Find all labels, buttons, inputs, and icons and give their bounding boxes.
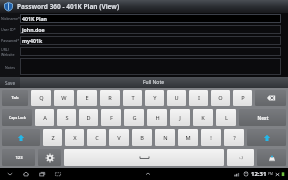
staticText: V [117,134,121,142]
button[interactable]: Q [31,90,51,106]
staticText: U [174,94,179,102]
button[interactable]: Full Note [20,77,288,88]
button[interactable]: O [211,90,230,106]
staticText: Next [257,115,269,121]
button[interactable]: K [193,109,213,126]
button[interactable]: :-) [227,149,254,166]
button[interactable] [144,170,152,178]
staticText: F [110,114,113,122]
button[interactable]: Settings [38,149,61,166]
staticText: N [163,134,168,142]
button[interactable]: Notes [0,57,288,77]
button[interactable]: Shift [2,129,40,146]
button[interactable]: User ID* [0,24,288,35]
staticText: Notes [5,65,15,70]
staticText: Z [51,134,55,142]
staticText: M [185,134,191,142]
staticText: 12:31 [251,170,267,178]
button[interactable]: R [100,90,120,106]
staticText: Caps Lock [9,115,26,120]
staticText: J [179,114,181,122]
button[interactable]: Caps Lock [2,109,32,126]
button[interactable]: ! [201,129,221,146]
button[interactable]: N [155,129,175,146]
button[interactable]: F [101,109,121,126]
staticText: my401k [22,37,43,44]
button[interactable]: X [65,129,84,146]
button[interactable]: A [35,109,54,126]
staticText: ! [210,134,212,142]
staticText: Password* [1,38,20,43]
staticText: K [201,114,205,122]
button[interactable]: Password* [0,35,288,46]
button[interactable]: T [123,90,142,106]
staticText: A [43,114,47,122]
staticText: G [132,114,137,122]
button[interactable]: B [132,129,152,146]
staticText: john.doe [22,26,45,33]
button[interactable]: W [54,90,74,106]
staticText: URL/Website [1,47,20,57]
button[interactable]: P [233,90,252,106]
button[interactable]: URL/Website [0,46,288,57]
staticText: P [241,94,245,102]
button[interactable]: Voice input [257,149,286,166]
staticText: H [155,114,160,122]
button[interactable]: V [109,129,129,146]
button[interactable]: Shift [247,129,286,146]
button[interactable]: G [124,109,144,126]
button[interactable]: U [167,90,186,106]
staticText: X [73,134,77,142]
button[interactable]: ? [224,129,244,146]
button[interactable]: C [87,129,106,146]
staticText: R [108,94,112,102]
button[interactable]: H [147,109,167,126]
button[interactable]: L [216,109,236,126]
staticText: E [85,94,89,102]
button[interactable]: Save [0,77,20,88]
button[interactable]: Nickname* [0,13,288,24]
button[interactable]: J [170,109,190,126]
button[interactable]: E [77,90,97,106]
button[interactable]: Backspace [255,90,286,106]
staticText: PM [268,172,273,176]
button[interactable]: S [57,109,76,126]
staticText: B [140,134,144,142]
staticText: W [61,94,67,102]
button[interactable]: Screenshot [53,169,63,179]
staticText: Full Note [143,79,165,86]
staticText: I [198,94,200,102]
staticText: 123 [15,155,23,161]
button[interactable]: 123 [2,149,35,166]
staticText: Y [153,94,157,102]
button[interactable]: Y [145,90,164,106]
staticText: O [218,94,223,102]
button[interactable]: D [79,109,98,126]
staticText: Q [39,94,44,102]
staticText: D [86,114,91,122]
button[interactable]: Recents [37,169,47,179]
button[interactable]: Back [5,169,15,179]
staticText: :-) [239,155,243,161]
staticText: Tab [11,95,19,101]
staticText: Password 360 - 401K Plan (View) [17,2,120,11]
button[interactable]: I [189,90,208,106]
button[interactable]: M [178,129,198,146]
button[interactable]: Space [64,149,224,166]
staticText: T [131,94,135,102]
button[interactable]: Next [239,109,286,126]
staticText: Save [5,80,16,86]
button[interactable]: Z [43,129,62,146]
staticText: 401K Plan [22,15,47,22]
staticText: ? [233,134,236,142]
staticText: Nickname* [1,16,20,21]
button[interactable]: Home [21,169,31,179]
staticText: C [95,134,99,142]
staticText: S [65,114,69,122]
staticText: L [225,114,228,122]
staticText: User ID* [1,27,16,32]
button[interactable]: Tab [2,90,28,106]
